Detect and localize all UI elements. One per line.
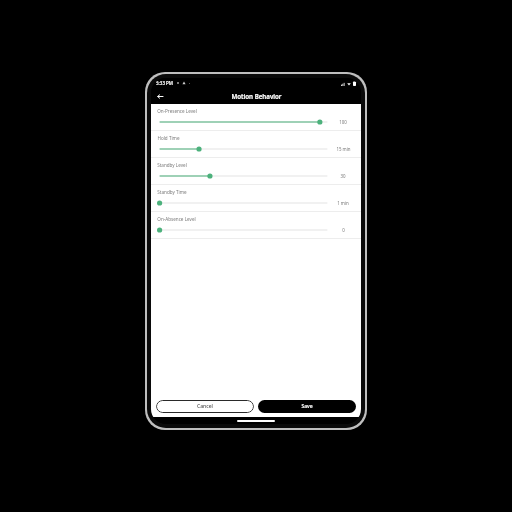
button[interactable]: Cancel (156, 400, 254, 413)
staticText: Standby Time (157, 189, 187, 195)
staticText: 1 min (337, 200, 349, 206)
staticText: 100 (339, 119, 347, 125)
staticText: 30 (340, 173, 346, 179)
button[interactable]: Hold Time (151, 131, 361, 157)
staticText: 5:33 PM (156, 80, 173, 86)
button[interactable]: Standby Time (151, 185, 361, 211)
staticText: Hold Time (157, 135, 180, 141)
staticText: Cancel (197, 403, 213, 410)
staticText: On-Presence Level (157, 108, 197, 114)
staticText: Standby Level (157, 162, 187, 168)
button[interactable]: Standby Level (151, 158, 361, 184)
staticText: 15 min (336, 146, 351, 152)
button[interactable]: On-Presence Level (151, 104, 361, 130)
staticText: Motion Behavior (231, 92, 282, 100)
staticText: 0 (342, 227, 345, 233)
button[interactable]: On-Absence Level (151, 212, 361, 238)
button[interactable]: Save (258, 400, 356, 413)
staticText: Save (301, 403, 313, 410)
staticText: On-Absence Level (157, 216, 196, 222)
button[interactable]: Back (154, 90, 167, 103)
